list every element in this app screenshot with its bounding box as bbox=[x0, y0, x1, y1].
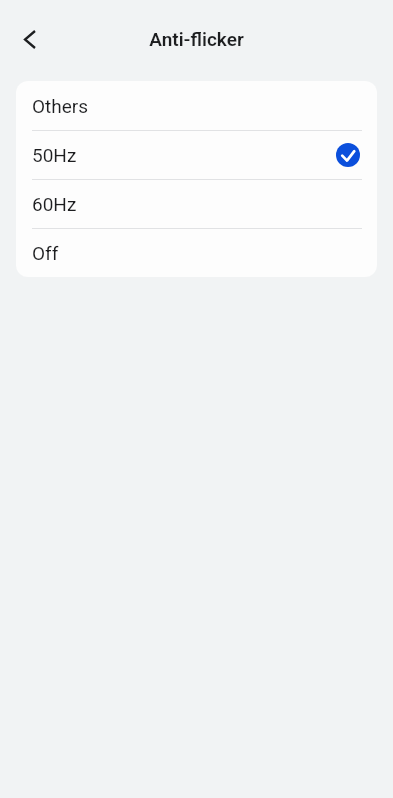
button[interactable]: Off bbox=[16, 228, 377, 277]
button[interactable]: 60Hz bbox=[16, 179, 377, 228]
button[interactable]: Others bbox=[16, 81, 377, 130]
button[interactable]: Back bbox=[9, 18, 51, 60]
staticText: Anti-flicker bbox=[149, 28, 244, 50]
other: Selected bbox=[336, 143, 360, 167]
staticText: 50Hz bbox=[32, 144, 77, 166]
staticText: Off bbox=[32, 242, 59, 264]
staticText: 60Hz bbox=[32, 193, 77, 215]
staticText: Others bbox=[32, 95, 89, 117]
button[interactable]: 50Hz bbox=[16, 130, 377, 179]
